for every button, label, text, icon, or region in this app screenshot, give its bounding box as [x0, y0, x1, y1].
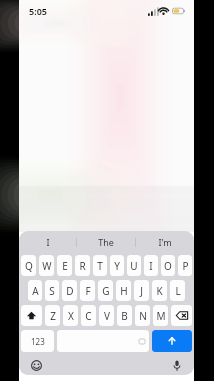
button[interactable]: I — [144, 255, 158, 276]
button[interactable]: X — [63, 305, 78, 326]
button[interactable]: Q — [21, 255, 36, 276]
staticText: V — [104, 309, 110, 323]
staticText: U — [130, 259, 138, 273]
button[interactable]: I'm — [136, 231, 194, 253]
staticText: I — [46, 236, 50, 248]
button[interactable]: R — [75, 255, 90, 276]
button[interactable]: W — [39, 255, 54, 276]
button[interactable]: Delete — [171, 305, 192, 326]
button[interactable]: J — [134, 280, 149, 301]
staticText: F — [85, 284, 91, 298]
button[interactable]: Send — [152, 330, 192, 352]
button[interactable]: K — [152, 280, 167, 301]
button[interactable]: U — [127, 255, 141, 276]
staticText: H — [120, 284, 128, 298]
button[interactable]: H — [116, 280, 131, 301]
staticText: The — [98, 236, 114, 248]
staticText: Z — [50, 309, 56, 323]
button[interactable]: M — [153, 305, 168, 326]
staticText: Y — [114, 259, 120, 273]
button[interactable]: Space — [57, 330, 149, 352]
staticText: I'm — [158, 236, 172, 248]
staticText: N — [139, 309, 147, 323]
staticText: G — [102, 284, 110, 298]
staticText: L — [175, 284, 181, 298]
button[interactable]: O — [161, 255, 175, 276]
button[interactable]: The — [77, 231, 135, 253]
staticText: D — [66, 284, 74, 298]
button[interactable]: Dictation — [168, 356, 186, 374]
staticText: R — [79, 259, 86, 273]
button[interactable]: 123 — [21, 330, 54, 352]
staticText: X — [68, 309, 74, 323]
staticText: W — [42, 259, 52, 273]
button[interactable]: S — [45, 280, 59, 301]
staticText: I — [149, 259, 153, 273]
staticText: E — [62, 259, 68, 273]
staticText: J — [140, 284, 143, 298]
button[interactable]: B — [117, 305, 132, 326]
staticText: M — [156, 309, 166, 323]
staticText: A — [32, 284, 39, 298]
staticText: 5:05 — [29, 5, 47, 17]
button[interactable]: I — [19, 231, 76, 253]
staticText: O — [164, 259, 172, 273]
button[interactable]: Y — [110, 255, 124, 276]
button[interactable]: L — [170, 280, 185, 301]
button[interactable]: Emoji — [27, 356, 45, 374]
button[interactable]: Shift — [21, 305, 42, 326]
button[interactable]: A — [28, 280, 42, 301]
staticText: P — [182, 259, 189, 273]
staticText: S — [49, 284, 55, 298]
button[interactable]: C — [81, 305, 96, 326]
staticText: T — [97, 259, 103, 273]
button[interactable]: V — [99, 305, 114, 326]
button[interactable]: E — [57, 255, 72, 276]
button[interactable]: T — [93, 255, 107, 276]
staticText: B — [121, 309, 128, 323]
button[interactable]: D — [62, 280, 77, 301]
button[interactable]: P — [178, 255, 192, 276]
button[interactable]: F — [80, 280, 95, 301]
staticText: Q — [25, 259, 33, 273]
button[interactable]: Z — [45, 305, 60, 326]
staticText: C — [85, 309, 92, 323]
button[interactable]: N — [135, 305, 150, 326]
staticText: K — [156, 284, 163, 298]
button[interactable]: G — [98, 280, 113, 301]
staticText: 123 — [31, 336, 45, 347]
